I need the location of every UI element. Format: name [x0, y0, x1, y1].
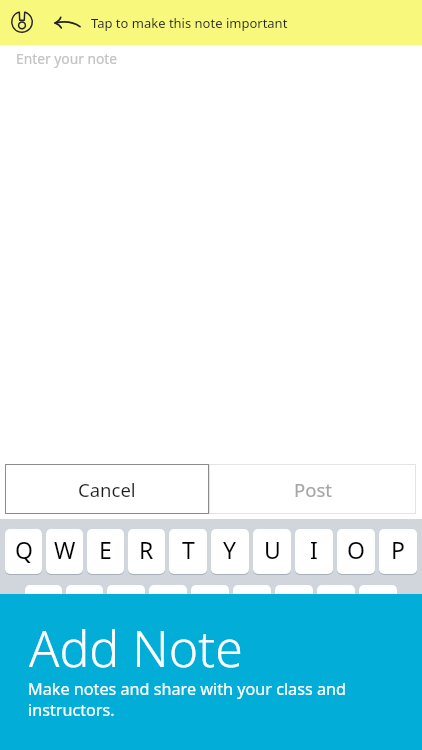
button[interactable]: T — [169, 529, 207, 574]
button[interactable]: Back — [50, 7, 84, 38]
button[interactable]: Post — [209, 464, 416, 514]
button[interactable]: Q — [5, 529, 42, 574]
staticText: E — [99, 534, 112, 565]
staticText: O — [347, 534, 365, 565]
button[interactable]: Mark important — [0, 0, 422, 45]
staticText: W — [54, 534, 76, 565]
staticText: Post — [294, 477, 332, 502]
button[interactable]: W — [46, 529, 83, 574]
staticText: T — [182, 534, 195, 565]
button[interactable]: P — [379, 529, 417, 574]
staticText: Q — [15, 534, 33, 565]
button[interactable]: E — [87, 529, 124, 574]
staticText: Add Note — [29, 614, 243, 682]
staticText: Tap to make this note important — [91, 14, 288, 32]
staticText: P — [391, 534, 405, 565]
staticText: Y — [223, 534, 237, 565]
staticText: Cancel — [78, 477, 136, 502]
button[interactable]: Cancel — [5, 464, 209, 514]
staticText: Make notes and share with your class and… — [28, 678, 346, 721]
button[interactable]: I — [295, 529, 333, 574]
button[interactable]: Y — [211, 529, 249, 574]
button[interactable]: U — [253, 529, 291, 574]
staticText: I — [310, 534, 318, 565]
staticText: Enter your note — [16, 49, 118, 68]
button[interactable]: Mark important — [10, 10, 34, 34]
button[interactable]: O — [337, 529, 375, 574]
staticText: U — [264, 534, 281, 565]
staticText: R — [139, 534, 154, 565]
button[interactable]: R — [128, 529, 165, 574]
